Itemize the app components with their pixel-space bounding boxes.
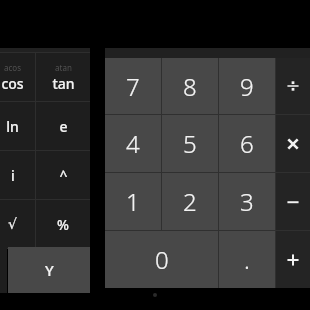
button[interactable]: 8 (162, 58, 218, 114)
staticText: 7 (126, 70, 140, 103)
staticText: atan (55, 62, 72, 73)
staticText: 4 (126, 127, 140, 160)
staticText: 5 (183, 127, 197, 160)
staticText: Y (45, 260, 54, 280)
staticText: i (11, 166, 15, 185)
button[interactable]: Y (8, 247, 90, 293)
button[interactable]: 1 (105, 173, 161, 230)
staticText: 9 (240, 70, 254, 103)
button[interactable]: ^ (36, 151, 90, 199)
staticText: 0 (155, 243, 169, 276)
button[interactable]: . (219, 231, 275, 288)
button[interactable]: Multiply (276, 115, 310, 172)
staticText: 6 (240, 127, 254, 160)
staticText: √ (8, 216, 17, 232)
button[interactable]: Divide (276, 58, 310, 114)
staticText: 8 (183, 70, 197, 103)
staticText: . (244, 243, 250, 276)
staticText: acos (4, 62, 21, 73)
staticText: ln (6, 117, 19, 136)
staticText: 2 (183, 185, 197, 218)
staticText: ^ (59, 166, 68, 185)
button[interactable]: 2 (162, 173, 218, 230)
button[interactable]: 7 (105, 58, 161, 114)
button[interactable]: 4 (105, 115, 161, 172)
staticText: % (57, 215, 69, 234)
button[interactable]: acos (0, 53, 35, 101)
button[interactable]: 6 (219, 115, 275, 172)
staticText: cos (1, 74, 24, 93)
button[interactable]: 5 (162, 115, 218, 172)
button[interactable]: √ (0, 200, 35, 248)
button[interactable]: Subtract (276, 173, 310, 230)
button[interactable]: 3 (219, 173, 275, 230)
button[interactable]: Add (276, 231, 310, 288)
button[interactable]: ln (0, 102, 35, 150)
staticText: tan (52, 74, 75, 93)
staticText: 3 (240, 185, 254, 218)
button[interactable]: 9 (219, 58, 275, 114)
button[interactable]: atan (36, 53, 90, 101)
staticText: e (59, 117, 68, 136)
button[interactable]: i (0, 151, 35, 199)
button[interactable]: e (36, 102, 90, 150)
button[interactable]: 0 (105, 231, 218, 288)
staticText: 1 (126, 185, 140, 218)
button[interactable]: % (36, 200, 90, 248)
